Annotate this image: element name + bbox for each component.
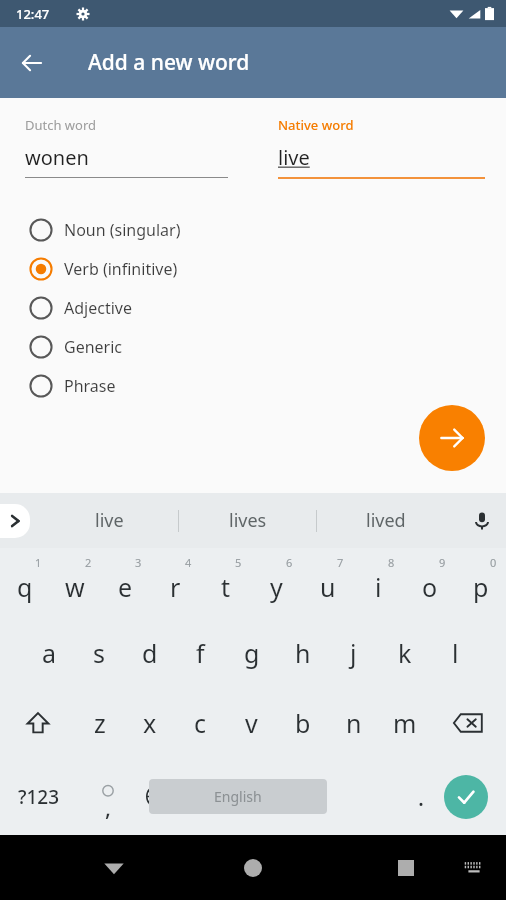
- staticText: r: [170, 570, 181, 604]
- button[interactable]: i: [353, 548, 404, 618]
- button[interactable]: a: [24, 618, 74, 688]
- button[interactable]: v: [226, 688, 277, 758]
- button[interactable]: lived: [317, 493, 454, 548]
- staticText: Adjective: [64, 297, 132, 319]
- button[interactable]: r: [150, 548, 200, 618]
- staticText: 1: [35, 555, 42, 570]
- button[interactable]: Noun (singular): [0, 210, 506, 249]
- staticText: Noun (singular): [64, 219, 181, 241]
- staticText: d: [142, 636, 158, 670]
- staticText: t: [221, 570, 231, 604]
- button[interactable]: Shift: [0, 688, 75, 758]
- staticText: 12:47: [16, 5, 50, 23]
- staticText: live: [95, 508, 124, 533]
- button[interactable]: English: [149, 779, 327, 814]
- button[interactable]: Generic: [0, 327, 506, 366]
- staticText: e: [118, 570, 133, 604]
- button[interactable]: q: [0, 548, 50, 618]
- staticText: 2: [85, 555, 92, 570]
- button[interactable]: live: [40, 493, 178, 548]
- button[interactable]: e: [100, 548, 150, 618]
- staticText: Generic: [64, 336, 123, 358]
- staticText: 5: [235, 555, 242, 570]
- staticText: 6: [286, 555, 293, 570]
- staticText: Phrase: [64, 375, 116, 397]
- staticText: k: [398, 636, 412, 670]
- staticText: u: [320, 570, 336, 604]
- button[interactable]: ?123: [0, 758, 78, 835]
- button[interactable]: wonen: [25, 144, 228, 171]
- staticText: wonen: [25, 144, 89, 171]
- staticText: i: [375, 570, 382, 604]
- button[interactable]: l: [430, 618, 481, 688]
- staticText: Native word: [278, 116, 354, 134]
- button[interactable]: m: [379, 688, 430, 758]
- button[interactable]: s: [74, 618, 124, 688]
- staticText: ?123: [18, 784, 60, 810]
- button[interactable]: o: [404, 548, 455, 618]
- button[interactable]: Recents: [382, 844, 430, 892]
- button[interactable]: d: [124, 618, 175, 688]
- button[interactable]: Change language: [128, 758, 186, 835]
- button[interactable]: p: [455, 548, 506, 618]
- button[interactable]: h: [277, 618, 328, 688]
- staticText: f: [196, 636, 205, 670]
- staticText: live: [278, 144, 310, 171]
- staticText: English: [214, 787, 262, 806]
- staticText: v: [245, 706, 258, 740]
- staticText: 8: [388, 555, 395, 570]
- button[interactable]: g: [226, 618, 277, 688]
- button[interactable]: b: [277, 688, 328, 758]
- button[interactable]: Home: [229, 844, 277, 892]
- staticText: a: [42, 636, 57, 670]
- button[interactable]: f: [175, 618, 226, 688]
- staticText: .: [418, 782, 424, 812]
- button[interactable]: Next: [419, 405, 485, 471]
- staticText: 0: [490, 555, 497, 570]
- button[interactable]: ,: [78, 758, 138, 835]
- staticText: n: [346, 706, 362, 740]
- staticText: g: [244, 636, 260, 670]
- staticText: Verb (infinitive): [64, 258, 178, 280]
- staticText: x: [143, 706, 157, 740]
- button[interactable]: Back: [8, 39, 56, 87]
- staticText: c: [194, 706, 207, 740]
- staticText: w: [65, 570, 85, 604]
- button[interactable]: Done: [444, 775, 488, 819]
- button[interactable]: c: [175, 688, 226, 758]
- staticText: o: [422, 570, 438, 604]
- staticText: Add a new word: [88, 48, 250, 77]
- button[interactable]: x: [125, 688, 175, 758]
- staticText: lives: [229, 508, 267, 533]
- staticText: m: [393, 706, 417, 740]
- button[interactable]: live: [278, 144, 485, 171]
- staticText: s: [93, 636, 105, 670]
- button[interactable]: .: [398, 758, 444, 835]
- button[interactable]: y: [251, 548, 302, 618]
- staticText: p: [473, 570, 489, 604]
- staticText: 4: [185, 555, 192, 570]
- button[interactable]: Adjective: [0, 288, 506, 327]
- button[interactable]: Backspace: [430, 688, 506, 758]
- button[interactable]: n: [328, 688, 379, 758]
- button[interactable]: j: [328, 618, 379, 688]
- button[interactable]: w: [50, 548, 100, 618]
- button[interactable]: Expand suggestions: [0, 504, 30, 538]
- staticText: l: [452, 636, 459, 670]
- staticText: z: [94, 706, 106, 740]
- button[interactable]: Switch keyboard: [454, 848, 494, 888]
- button[interactable]: Phrase: [0, 366, 506, 405]
- button[interactable]: lives: [179, 493, 316, 548]
- staticText: j: [350, 636, 357, 670]
- button[interactable]: t: [200, 548, 251, 618]
- button[interactable]: Verb (infinitive): [0, 249, 506, 288]
- button[interactable]: Voice input: [458, 493, 506, 548]
- staticText: 9: [439, 555, 446, 570]
- button[interactable]: z: [75, 688, 125, 758]
- button[interactable]: k: [379, 618, 430, 688]
- staticText: y: [270, 570, 283, 604]
- staticText: 3: [135, 555, 142, 570]
- button[interactable]: Hide keyboard: [90, 844, 138, 892]
- button[interactable]: u: [302, 548, 353, 618]
- staticText: ,: [105, 792, 112, 822]
